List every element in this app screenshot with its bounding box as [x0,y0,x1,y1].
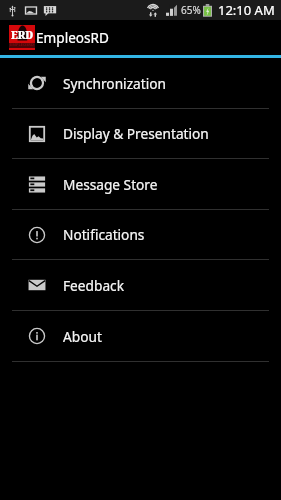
button[interactable]: Synchronization [0,58,281,108]
staticText: Feedback [63,276,124,295]
button[interactable]: Display & Presentation [0,109,281,158]
button[interactable]: Feedback [0,260,281,310]
staticText: ERD [11,28,34,42]
staticText: Notifications [63,225,145,244]
button[interactable]: Notifications [0,210,281,259]
staticText: Synchronization [63,74,166,93]
staticText: Message Store [63,175,158,194]
button[interactable]: ERD [0,20,119,55]
staticText: Display & Presentation [63,124,209,143]
staticText: About [63,327,102,346]
staticText: 12:10 AM [218,1,275,19]
staticText: EMPLEOSRD [10,42,34,47]
staticText: 65% [181,3,201,17]
staticText: EmpleosRD [36,28,109,47]
button[interactable]: Message Store [0,159,281,209]
button[interactable]: About [0,311,281,361]
